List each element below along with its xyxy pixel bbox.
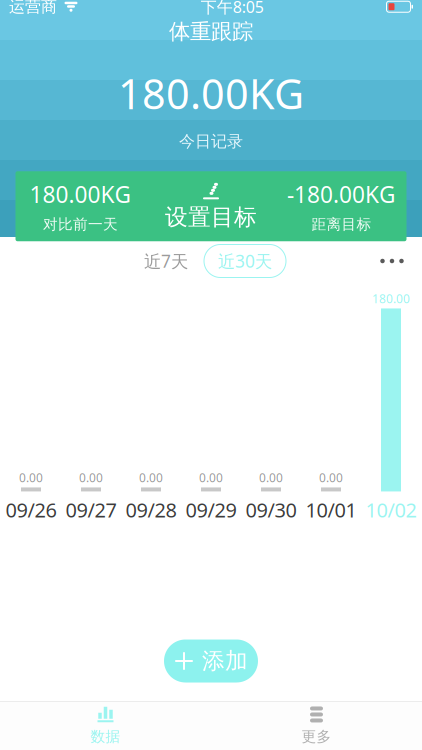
staticText: 09/26	[5, 496, 56, 523]
button[interactable]: 近7天	[136, 243, 196, 278]
staticText: 09/27	[65, 496, 116, 523]
staticText: 180.00KG	[29, 179, 131, 209]
staticText: 近7天	[144, 249, 188, 272]
staticText: 180.00KG	[118, 66, 304, 121]
staticText: 10/01	[305, 496, 356, 523]
staticText: 10/02	[365, 496, 416, 523]
staticText: 09/30	[245, 496, 296, 523]
staticText: 0.00	[139, 469, 163, 485]
button[interactable]: 设置目标	[145, 171, 276, 241]
staticText: 09/28	[125, 496, 176, 523]
staticText: 距离目标	[311, 215, 371, 233]
button[interactable]: 添加	[164, 639, 258, 682]
staticText: 数据	[90, 727, 120, 745]
staticText: 体重跟踪	[169, 19, 253, 45]
staticText: 0.00	[259, 469, 283, 485]
staticText: 对比前一天	[43, 215, 118, 233]
staticText: 更多	[301, 727, 331, 745]
staticText: 0.00	[79, 469, 103, 485]
staticText: 下午8:05	[201, 0, 264, 17]
staticText: 今日记录	[179, 132, 243, 151]
staticText: 运营商	[9, 0, 57, 17]
staticText: 09/29	[185, 496, 236, 523]
staticText: 设置目标	[165, 203, 257, 231]
button[interactable]: 数据	[0, 702, 211, 750]
staticText: 180.00	[372, 290, 410, 306]
staticText: 0.00	[199, 469, 223, 485]
staticText: 0.00	[19, 469, 43, 485]
staticText: -180.00KG	[287, 179, 396, 209]
button[interactable]: More options	[369, 243, 415, 279]
button[interactable]: 近30天	[204, 244, 286, 277]
staticText: 0.00	[319, 469, 343, 485]
staticText: 近30天	[218, 249, 272, 272]
staticText: 添加	[202, 647, 248, 675]
button[interactable]: 更多	[211, 702, 422, 750]
